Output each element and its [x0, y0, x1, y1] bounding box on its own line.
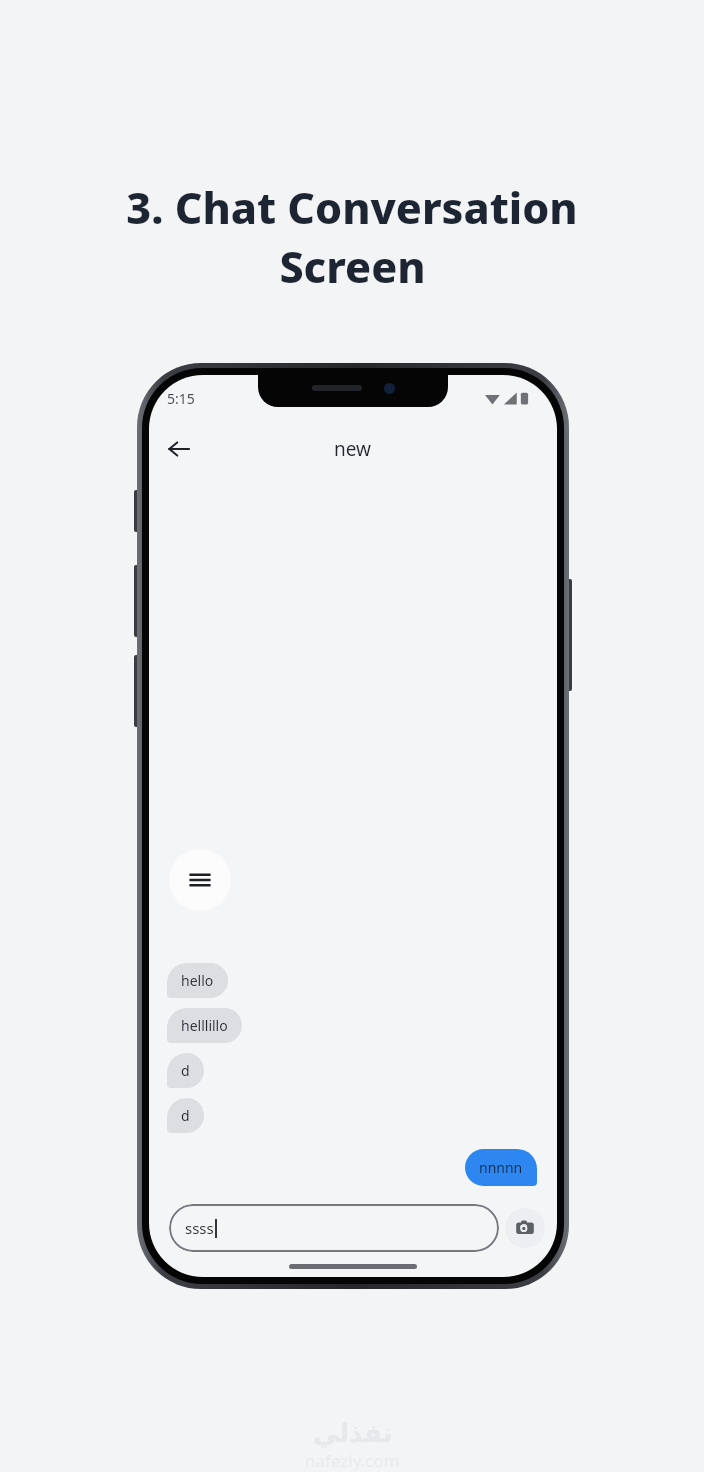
staticText: d — [181, 1061, 190, 1080]
button[interactable]: nnnnn — [465, 1149, 537, 1186]
button[interactable]: helllillo — [167, 1008, 242, 1043]
button[interactable]: Camera — [505, 1208, 545, 1248]
button[interactable]: Back — [157, 427, 201, 471]
button[interactable]: Menu — [169, 849, 231, 911]
button[interactable]: d — [167, 1053, 204, 1088]
staticText: hello — [181, 971, 214, 990]
staticText: new — [334, 436, 372, 462]
button[interactable]: ssss — [185, 1204, 483, 1252]
button[interactable]: d — [167, 1098, 204, 1133]
staticText: nafezly.com — [305, 1449, 400, 1472]
staticText: 3. Chat Conversation — [126, 178, 578, 237]
staticText: nnnnn — [479, 1158, 523, 1177]
staticText: Screen — [279, 237, 426, 296]
staticText: نفذلي — [313, 1418, 393, 1448]
staticText: ssss — [185, 1218, 214, 1238]
button[interactable]: hello — [167, 963, 228, 998]
staticText: helllillo — [181, 1016, 228, 1035]
staticText: d — [181, 1106, 190, 1125]
staticText: 5:15 — [167, 389, 195, 408]
